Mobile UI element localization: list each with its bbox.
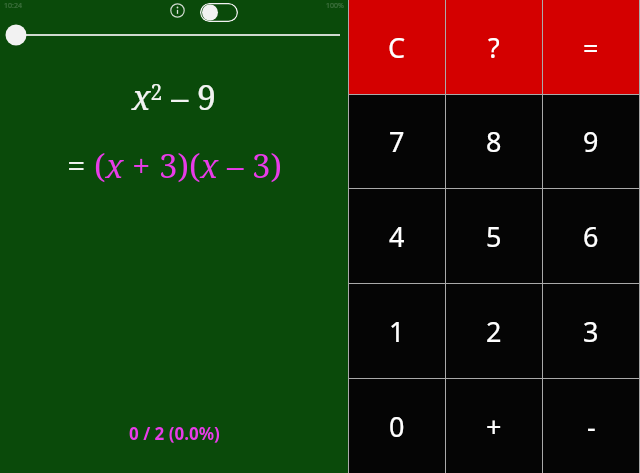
staticText: + <box>486 408 502 445</box>
button[interactable]: 9 <box>543 95 639 188</box>
button[interactable]: Info <box>166 0 188 21</box>
staticText: 3 <box>583 313 599 350</box>
button[interactable]: + <box>446 379 542 473</box>
button[interactable]: 5 <box>446 189 542 283</box>
staticText: 10:24 <box>4 1 22 11</box>
button[interactable]: Toggle <box>200 0 242 24</box>
staticText: = <box>583 29 599 66</box>
staticText: 6 <box>583 218 599 255</box>
staticText: 9 <box>583 123 599 160</box>
staticText: 1 <box>389 313 405 350</box>
staticText: 8 <box>486 123 502 160</box>
staticText: ? <box>488 29 500 66</box>
button[interactable]: = <box>543 0 639 94</box>
staticText: 4 <box>389 218 405 255</box>
button[interactable]: 7 <box>349 95 445 188</box>
staticText: = (x + 3)(x – 3) <box>67 143 282 188</box>
staticText: 0 <box>389 408 405 445</box>
staticText: 7 <box>389 123 405 160</box>
button[interactable]: 8 <box>446 95 542 188</box>
button[interactable]: - <box>543 379 639 473</box>
button[interactable]: C <box>349 0 445 94</box>
button[interactable]: 4 <box>349 189 445 283</box>
button[interactable]: ? <box>446 0 542 94</box>
button[interactable]: 0 <box>349 379 445 473</box>
staticText: 5 <box>486 218 502 255</box>
staticText: 100% <box>326 1 344 11</box>
staticText: x2 – 9 <box>132 74 216 120</box>
button[interactable]: 3 <box>543 284 639 378</box>
staticText: 2 <box>486 313 502 350</box>
staticText: - <box>587 408 596 445</box>
staticText: C <box>388 29 406 66</box>
staticText: 0 / 2 (0.0%) <box>129 422 220 445</box>
button[interactable]: 2 <box>446 284 542 378</box>
button[interactable]: 6 <box>543 189 639 283</box>
button[interactable]: 1 <box>349 284 445 378</box>
